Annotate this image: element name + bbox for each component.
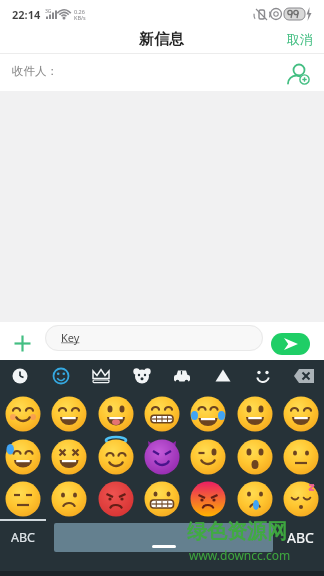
- button[interactable]: [236, 480, 274, 518]
- button[interactable]: [143, 438, 181, 476]
- button[interactable]: [189, 480, 227, 518]
- staticText: 0.26 KB/s: [74, 8, 86, 21]
- button[interactable]: [50, 480, 88, 518]
- button[interactable]: 收件人：: [0, 54, 324, 91]
- button[interactable]: [282, 395, 320, 433]
- button[interactable]: [286, 62, 310, 86]
- button[interactable]: [97, 438, 135, 476]
- button[interactable]: [189, 395, 227, 433]
- button[interactable]: [12, 333, 33, 354]
- staticText: 取消: [287, 31, 313, 47]
- button[interactable]: [167, 362, 197, 390]
- button[interactable]: [4, 395, 42, 433]
- button[interactable]: [97, 480, 135, 518]
- button[interactable]: Key: [45, 325, 263, 351]
- button[interactable]: [282, 480, 320, 518]
- button[interactable]: [143, 480, 181, 518]
- staticText: 新信息: [139, 30, 184, 49]
- button[interactable]: [208, 362, 238, 390]
- button[interactable]: ABC: [278, 521, 322, 554]
- button[interactable]: [271, 333, 310, 355]
- staticText: ABC: [11, 529, 36, 546]
- staticText: 22:14: [12, 7, 41, 22]
- button[interactable]: [248, 362, 278, 390]
- button[interactable]: [46, 362, 76, 390]
- staticText: ABC: [287, 528, 314, 547]
- staticText: www.downcc.com: [189, 547, 291, 563]
- button[interactable]: [97, 395, 135, 433]
- staticText: 绿色资源网: [187, 519, 287, 544]
- button[interactable]: [54, 523, 273, 552]
- button[interactable]: [289, 362, 319, 390]
- button[interactable]: [4, 480, 42, 518]
- button[interactable]: [50, 395, 88, 433]
- button[interactable]: [86, 362, 116, 390]
- button[interactable]: [50, 438, 88, 476]
- staticText: Key: [61, 330, 80, 345]
- staticText: 收件人：: [12, 64, 58, 78]
- button[interactable]: [236, 438, 274, 476]
- button[interactable]: [189, 438, 227, 476]
- button[interactable]: ABC: [0, 521, 46, 554]
- button[interactable]: [143, 395, 181, 433]
- button[interactable]: [127, 362, 157, 390]
- button[interactable]: [236, 395, 274, 433]
- button[interactable]: [5, 362, 35, 390]
- staticText: 3G: [45, 8, 52, 15]
- button[interactable]: [282, 438, 320, 476]
- button[interactable]: [4, 438, 42, 476]
- button[interactable]: 取消: [278, 26, 322, 52]
